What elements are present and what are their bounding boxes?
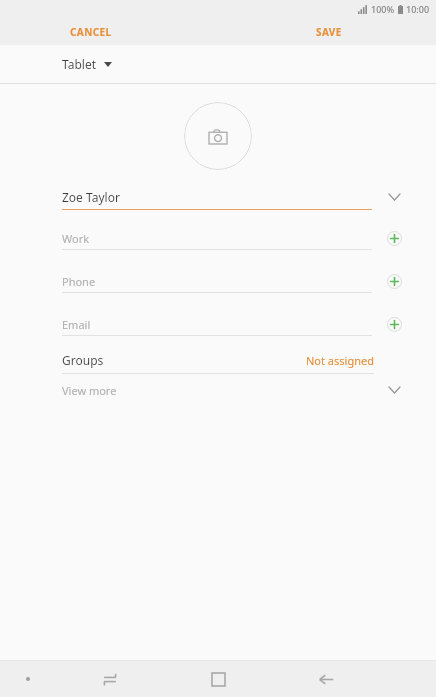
button[interactable]: Expand name fields	[372, 184, 416, 210]
button[interactable]: Recents	[56, 661, 164, 697]
staticText: Tablet	[62, 56, 97, 72]
button[interactable]: Groups	[62, 347, 374, 373]
staticText: SAVE	[316, 25, 342, 39]
button[interactable]: SAVE	[310, 21, 348, 43]
staticText: CANCEL	[70, 25, 112, 39]
staticText: Work	[62, 231, 90, 246]
button[interactable]: Zoe Taylor	[62, 185, 372, 209]
staticText: Email	[62, 317, 91, 332]
button[interactable]: Phone	[62, 270, 372, 292]
staticText: Zoe Taylor	[62, 189, 120, 205]
staticText: Groups	[62, 352, 104, 368]
button[interactable]: View more	[0, 374, 436, 406]
button[interactable]: Tablet	[0, 45, 436, 83]
button[interactable]: Add contact photo	[184, 102, 252, 170]
staticText: 10:00	[406, 3, 430, 15]
staticText: Not assigned	[306, 353, 374, 368]
button[interactable]: Email	[62, 313, 372, 335]
button[interactable]: Home	[164, 661, 272, 697]
button[interactable]: Work	[62, 227, 372, 249]
button[interactable]: Back	[272, 661, 380, 697]
staticText: Phone	[62, 274, 96, 289]
staticText: View more	[62, 383, 117, 398]
button[interactable]: Add Phone	[372, 266, 416, 296]
button[interactable]: Add Work	[372, 223, 416, 253]
button[interactable]: Menu indicator	[0, 661, 56, 697]
staticText: 100%	[371, 3, 395, 15]
button[interactable]: Add Email	[372, 309, 416, 339]
button[interactable]: CANCEL	[64, 21, 118, 43]
